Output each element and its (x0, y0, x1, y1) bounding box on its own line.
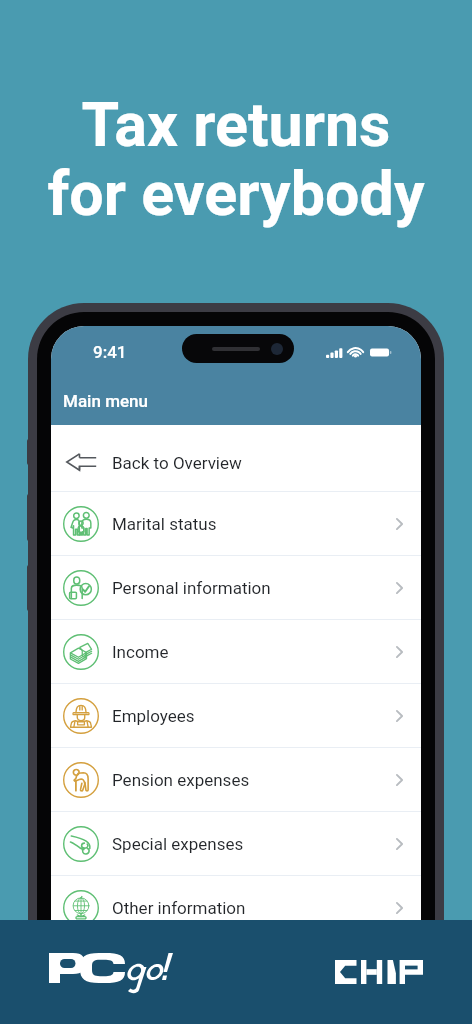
button[interactable]: Back (51, 425, 421, 492)
button[interactable]: Other information (51, 876, 421, 940)
staticText: Tax returns for everybody (0, 89, 472, 230)
staticText: Pension expenses (112, 770, 250, 790)
button[interactable]: Pension expenses (51, 748, 421, 812)
staticText: Special expenses (112, 834, 244, 854)
staticText: Marital status (112, 514, 217, 534)
staticText: 9:41 (93, 342, 127, 362)
staticText: Income (112, 642, 169, 662)
staticText: Personal information (112, 578, 271, 598)
other: CHIP logo (335, 960, 423, 984)
button[interactable]: Employees (51, 684, 421, 748)
staticText: Main menu (63, 391, 148, 411)
button[interactable]: Marital status (51, 492, 421, 556)
button[interactable]: Personal information (51, 556, 421, 620)
staticText: Other information (112, 898, 246, 918)
other: Back (66, 453, 97, 471)
staticText: Back to Overview (112, 453, 242, 473)
staticText: Employees (112, 706, 195, 726)
other: PCgo logo (49, 953, 171, 987)
button[interactable]: Special expenses (51, 812, 421, 876)
button[interactable]: Income (51, 620, 421, 684)
